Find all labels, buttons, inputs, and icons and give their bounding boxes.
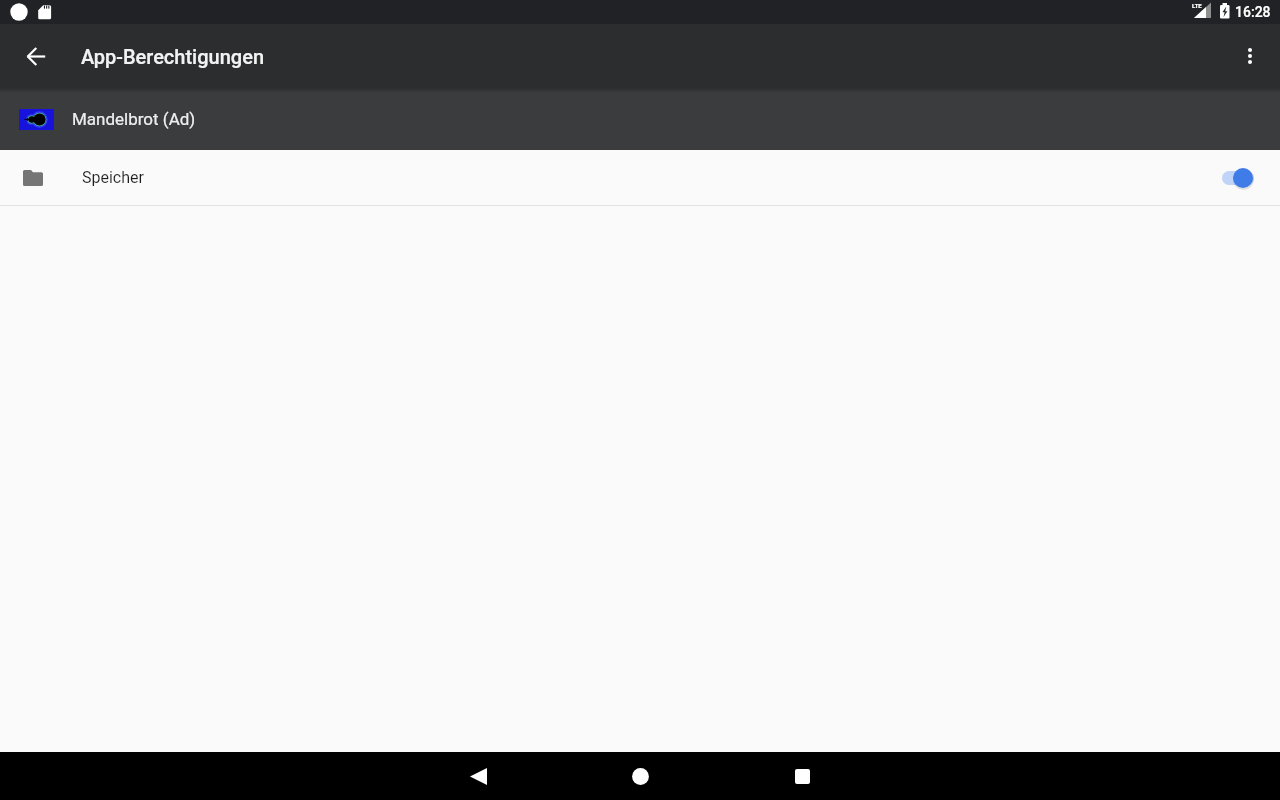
staticText: App-Berechtigungen bbox=[81, 45, 264, 68]
button[interactable] bbox=[12, 32, 60, 80]
button[interactable] bbox=[1222, 166, 1256, 190]
button[interactable] bbox=[742, 752, 862, 800]
staticText: Speicher bbox=[82, 168, 144, 187]
staticText: Mandelbrot (Ad) bbox=[72, 109, 196, 129]
staticText: LTE bbox=[1192, 2, 1202, 9]
button[interactable] bbox=[580, 752, 700, 800]
button[interactable] bbox=[418, 752, 538, 800]
staticText: 16:28 bbox=[1235, 4, 1271, 20]
button[interactable]: Mandelbrot (Ad) bbox=[0, 88, 1280, 150]
button[interactable] bbox=[1230, 36, 1270, 76]
button[interactable]: Speicher bbox=[0, 150, 1280, 205]
